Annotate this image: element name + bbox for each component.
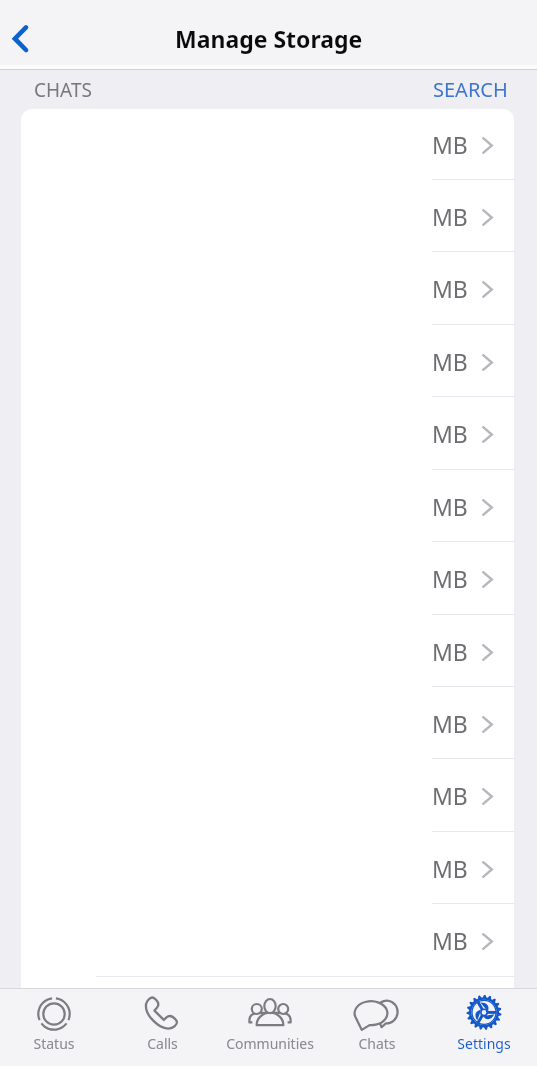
staticText: MB — [432, 346, 468, 377]
button[interactable]: Communities — [216, 989, 323, 1053]
staticText: SEARCH — [433, 76, 508, 103]
staticText: MB — [432, 418, 468, 449]
staticText: MB — [432, 273, 468, 304]
button[interactable]: MB — [21, 541, 514, 613]
staticText: MB — [432, 129, 468, 160]
button[interactable]: MB — [21, 251, 514, 323]
button[interactable]: MB — [21, 831, 514, 903]
button[interactable]: Back — [0, 15, 44, 62]
staticText: CHATS — [34, 77, 92, 103]
staticText: MB — [432, 563, 468, 594]
staticText: Manage Storage — [175, 23, 363, 54]
button[interactable]: Chats — [323, 989, 430, 1053]
button[interactable]: MB — [21, 903, 514, 975]
button[interactable]: MB — [21, 614, 514, 686]
staticText: MB — [432, 780, 468, 811]
button[interactable]: MB — [21, 758, 514, 830]
staticText: MB — [432, 925, 468, 956]
staticText: Chats — [358, 1034, 396, 1053]
staticText: Settings — [457, 1034, 511, 1053]
staticText: MB — [432, 201, 468, 232]
button[interactable]: MB — [21, 469, 514, 541]
button[interactable]: MB — [21, 976, 514, 988]
staticText: Status — [33, 1034, 75, 1053]
staticText: Calls — [147, 1034, 178, 1053]
button[interactable]: Settings — [430, 989, 537, 1053]
button[interactable]: MB — [21, 109, 514, 179]
staticText: MB — [432, 853, 468, 884]
button[interactable]: MB — [21, 396, 514, 468]
button[interactable]: SEARCH — [433, 72, 537, 107]
button[interactable]: MB — [21, 324, 514, 396]
staticText: MB — [432, 491, 468, 522]
button[interactable]: Status — [0, 989, 108, 1053]
staticText: MB — [432, 636, 468, 667]
staticText: Communities — [226, 1034, 314, 1053]
button[interactable]: MB — [21, 179, 514, 251]
button[interactable]: MB — [21, 686, 514, 758]
button[interactable]: Calls — [108, 989, 216, 1053]
staticText: MB — [432, 708, 468, 739]
